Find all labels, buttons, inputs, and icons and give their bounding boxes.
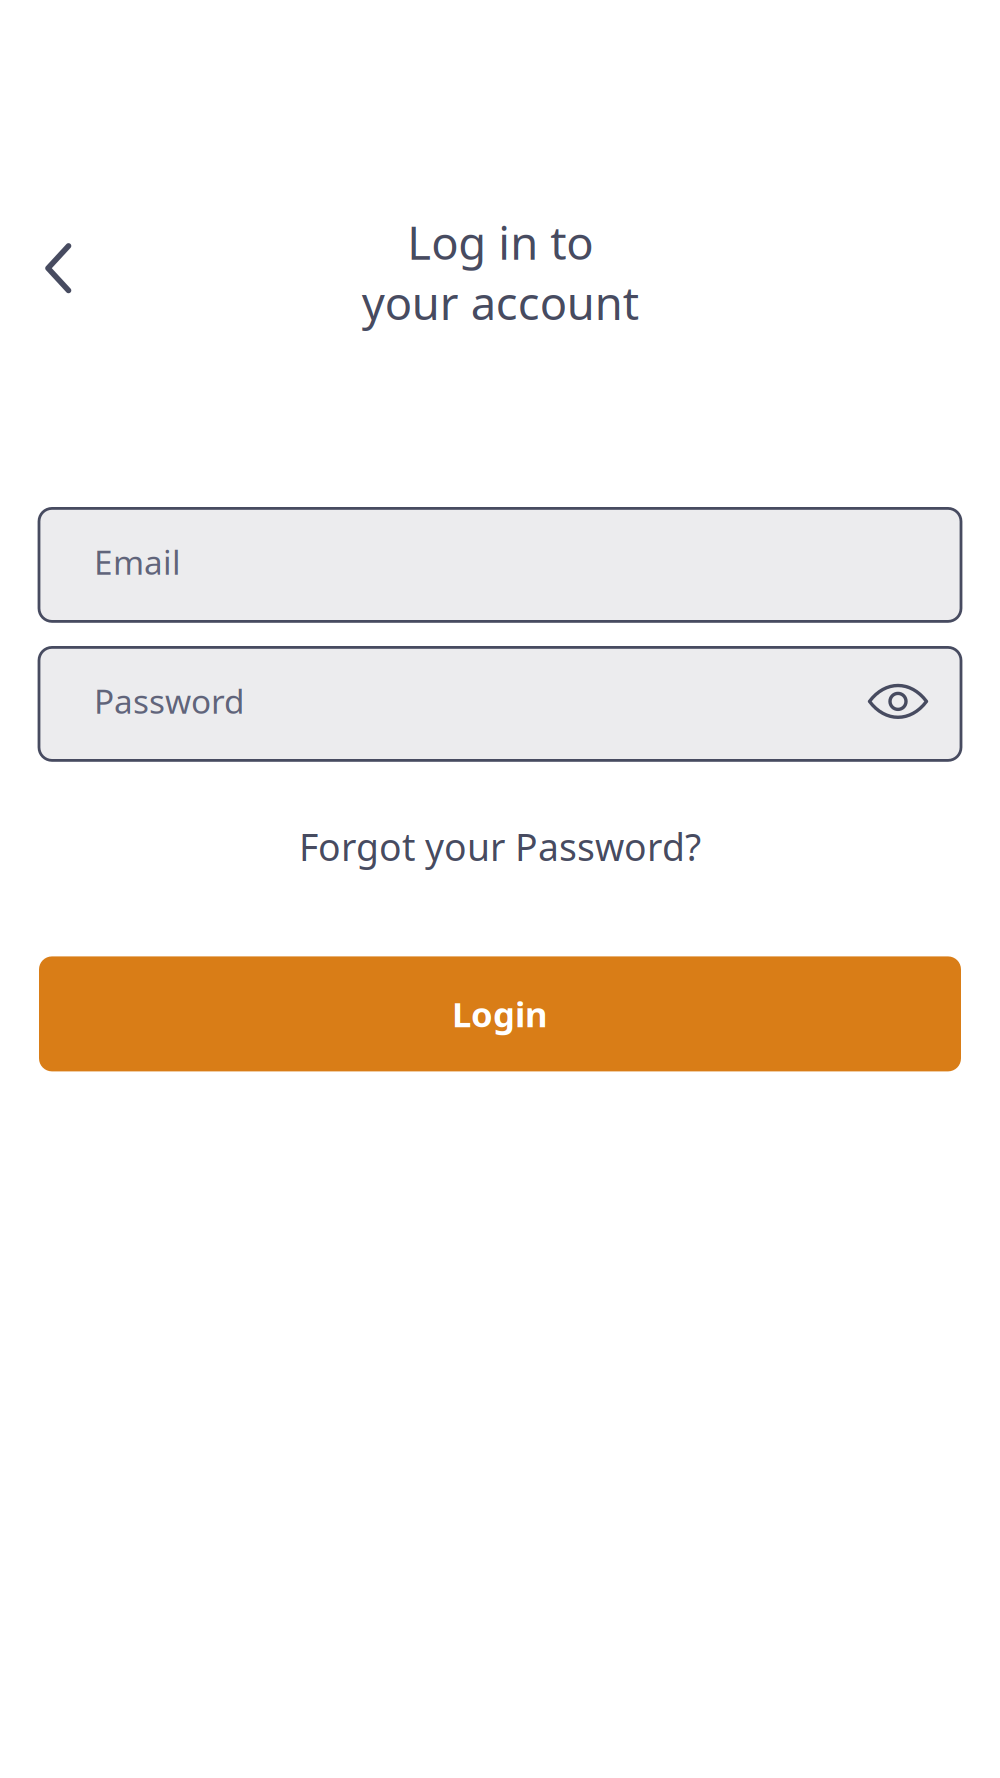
staticText: Password	[94, 679, 245, 723]
button[interactable]: Login	[39, 956, 961, 1071]
button[interactable]: Show password	[861, 667, 935, 741]
staticText: Log in to your account	[361, 212, 638, 332]
staticText: Login	[452, 991, 548, 1037]
button[interactable]: Password	[39, 647, 961, 760]
button[interactable]: Back	[39, 241, 102, 303]
staticText: Forgot your Password?	[299, 822, 701, 871]
button[interactable]: Forgot your Password?	[39, 819, 961, 873]
staticText: Email	[94, 540, 181, 584]
button[interactable]: Email	[39, 508, 961, 621]
